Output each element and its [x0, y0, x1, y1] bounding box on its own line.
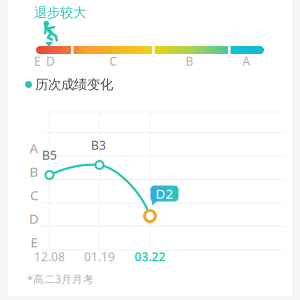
staticText: A — [242, 53, 250, 69]
staticText: A — [29, 139, 38, 157]
staticText: 03.22 — [134, 248, 165, 264]
staticText: 01.19 — [84, 248, 115, 264]
staticText: B5 — [42, 147, 57, 163]
staticText: D2 — [155, 185, 173, 202]
staticText: B — [29, 163, 38, 180]
staticText: C — [109, 53, 117, 69]
staticText: D — [46, 53, 55, 69]
staticText: *高二3月月考 — [27, 272, 94, 286]
staticText: E — [34, 53, 41, 69]
staticText: 12.08 — [34, 248, 65, 264]
staticText: D — [29, 210, 39, 227]
staticText: B — [185, 53, 193, 69]
staticText: E — [30, 233, 37, 251]
staticText: 退步较大 — [34, 4, 86, 21]
staticText: B3 — [91, 137, 106, 153]
staticText: 历次成绩变化 — [35, 76, 113, 93]
staticText: C — [30, 186, 38, 204]
